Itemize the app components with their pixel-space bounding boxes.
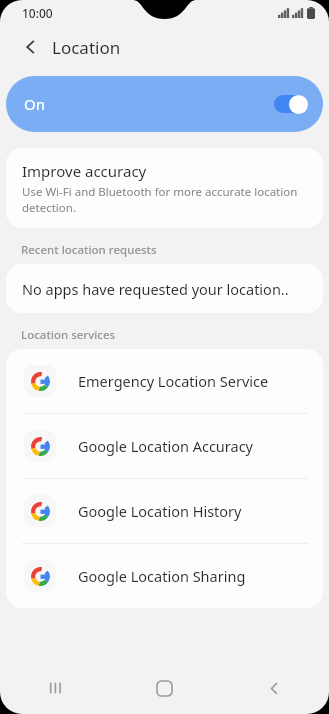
staticText: On xyxy=(24,94,45,114)
button[interactable]: Google Location Accuracy xyxy=(6,414,323,478)
button[interactable]: Home xyxy=(109,662,219,714)
staticText: Google Location History xyxy=(78,501,242,521)
button[interactable]: Back xyxy=(219,662,329,714)
staticText: Location services xyxy=(21,327,116,343)
staticText: Emergency Location Service xyxy=(78,371,269,391)
staticText: Use Wi-Fi and Bluetooth for more accurat… xyxy=(22,184,307,215)
staticText: Improve accuracy xyxy=(22,161,147,181)
button[interactable]: Improve accuracy xyxy=(6,148,323,228)
button[interactable]: Google Location History xyxy=(6,479,323,543)
staticText: No apps have requested your location.. xyxy=(22,279,289,299)
button[interactable]: Emergency Location Service xyxy=(6,349,323,413)
button[interactable]: Back xyxy=(14,30,48,64)
staticText: Recent location requests xyxy=(21,242,157,258)
button[interactable]: On xyxy=(6,76,323,132)
staticText: Google Location Accuracy xyxy=(78,436,253,456)
button[interactable]: Recents xyxy=(0,662,109,714)
button[interactable]: Google Location Sharing xyxy=(6,544,323,608)
staticText: Location xyxy=(52,36,121,59)
staticText: Google Location Sharing xyxy=(78,566,246,586)
button[interactable]: No apps have requested your location.. xyxy=(6,264,323,313)
staticText: 10:00 xyxy=(22,5,53,21)
